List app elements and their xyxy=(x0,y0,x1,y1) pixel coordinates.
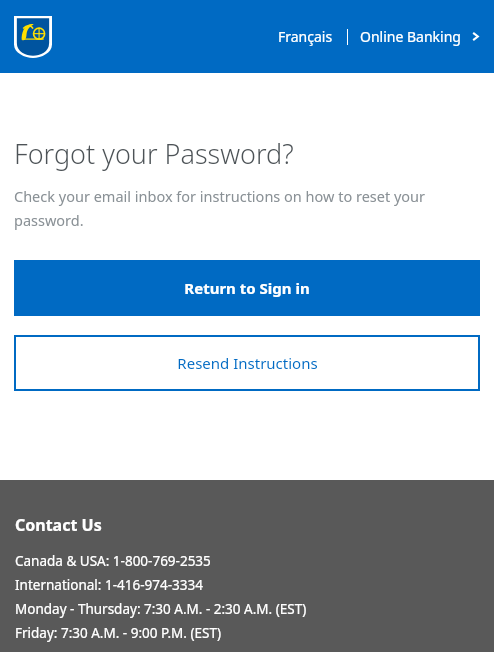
button[interactable]: Resend Instructions xyxy=(14,335,480,391)
staticText: International: 1-416-974-3334 xyxy=(15,576,203,594)
staticText: Online Banking xyxy=(360,27,461,46)
staticText: Return to Sign in xyxy=(184,278,310,298)
staticText: Forgot your Password? xyxy=(14,135,294,172)
button[interactable]: Return to Sign in xyxy=(14,260,480,316)
button[interactable]: RBC home xyxy=(14,16,52,58)
staticText: Resend Instructions xyxy=(177,353,318,373)
staticText: Contact Us xyxy=(15,514,102,536)
button[interactable]: Online Banking xyxy=(356,21,486,52)
staticText: Friday: 7:30 A.M. - 9:00 P.M. (EST) xyxy=(15,624,221,642)
staticText: Canada & USA: 1-800-769-2535 xyxy=(15,552,211,570)
staticText: Français xyxy=(278,27,333,46)
button[interactable]: Français xyxy=(272,21,339,52)
staticText: Check your email inbox for instructions … xyxy=(14,186,446,230)
staticText: Monday - Thursday: 7:30 A.M. - 2:30 A.M.… xyxy=(15,600,307,618)
